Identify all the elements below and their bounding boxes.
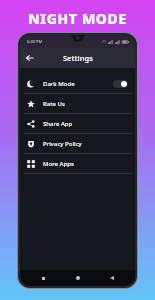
staticText: Settings bbox=[63, 53, 93, 63]
staticText: Dark Mode bbox=[43, 80, 113, 88]
button[interactable]: Rate Us bbox=[20, 94, 135, 113]
staticText: Rate Us bbox=[43, 100, 128, 108]
staticText: Privacy Policy bbox=[43, 140, 128, 148]
button[interactable]: Privacy Policy bbox=[20, 134, 135, 153]
button[interactable]: Dark Mode toggle bbox=[113, 80, 128, 88]
button[interactable]: Recent apps bbox=[38, 273, 48, 283]
button[interactable]: Back bbox=[107, 273, 117, 283]
staticText: Share App bbox=[43, 120, 128, 128]
button[interactable]: Share App bbox=[20, 114, 135, 133]
button[interactable]: Home bbox=[73, 273, 83, 283]
button[interactable]: More Apps bbox=[20, 154, 135, 173]
button[interactable]: Back bbox=[23, 51, 37, 65]
staticText: NIGHT MODE bbox=[0, 9, 155, 28]
button[interactable]: Dark Mode bbox=[20, 74, 135, 93]
staticText: 6:40 PM bbox=[27, 39, 43, 44]
staticText: More Apps bbox=[43, 160, 128, 168]
